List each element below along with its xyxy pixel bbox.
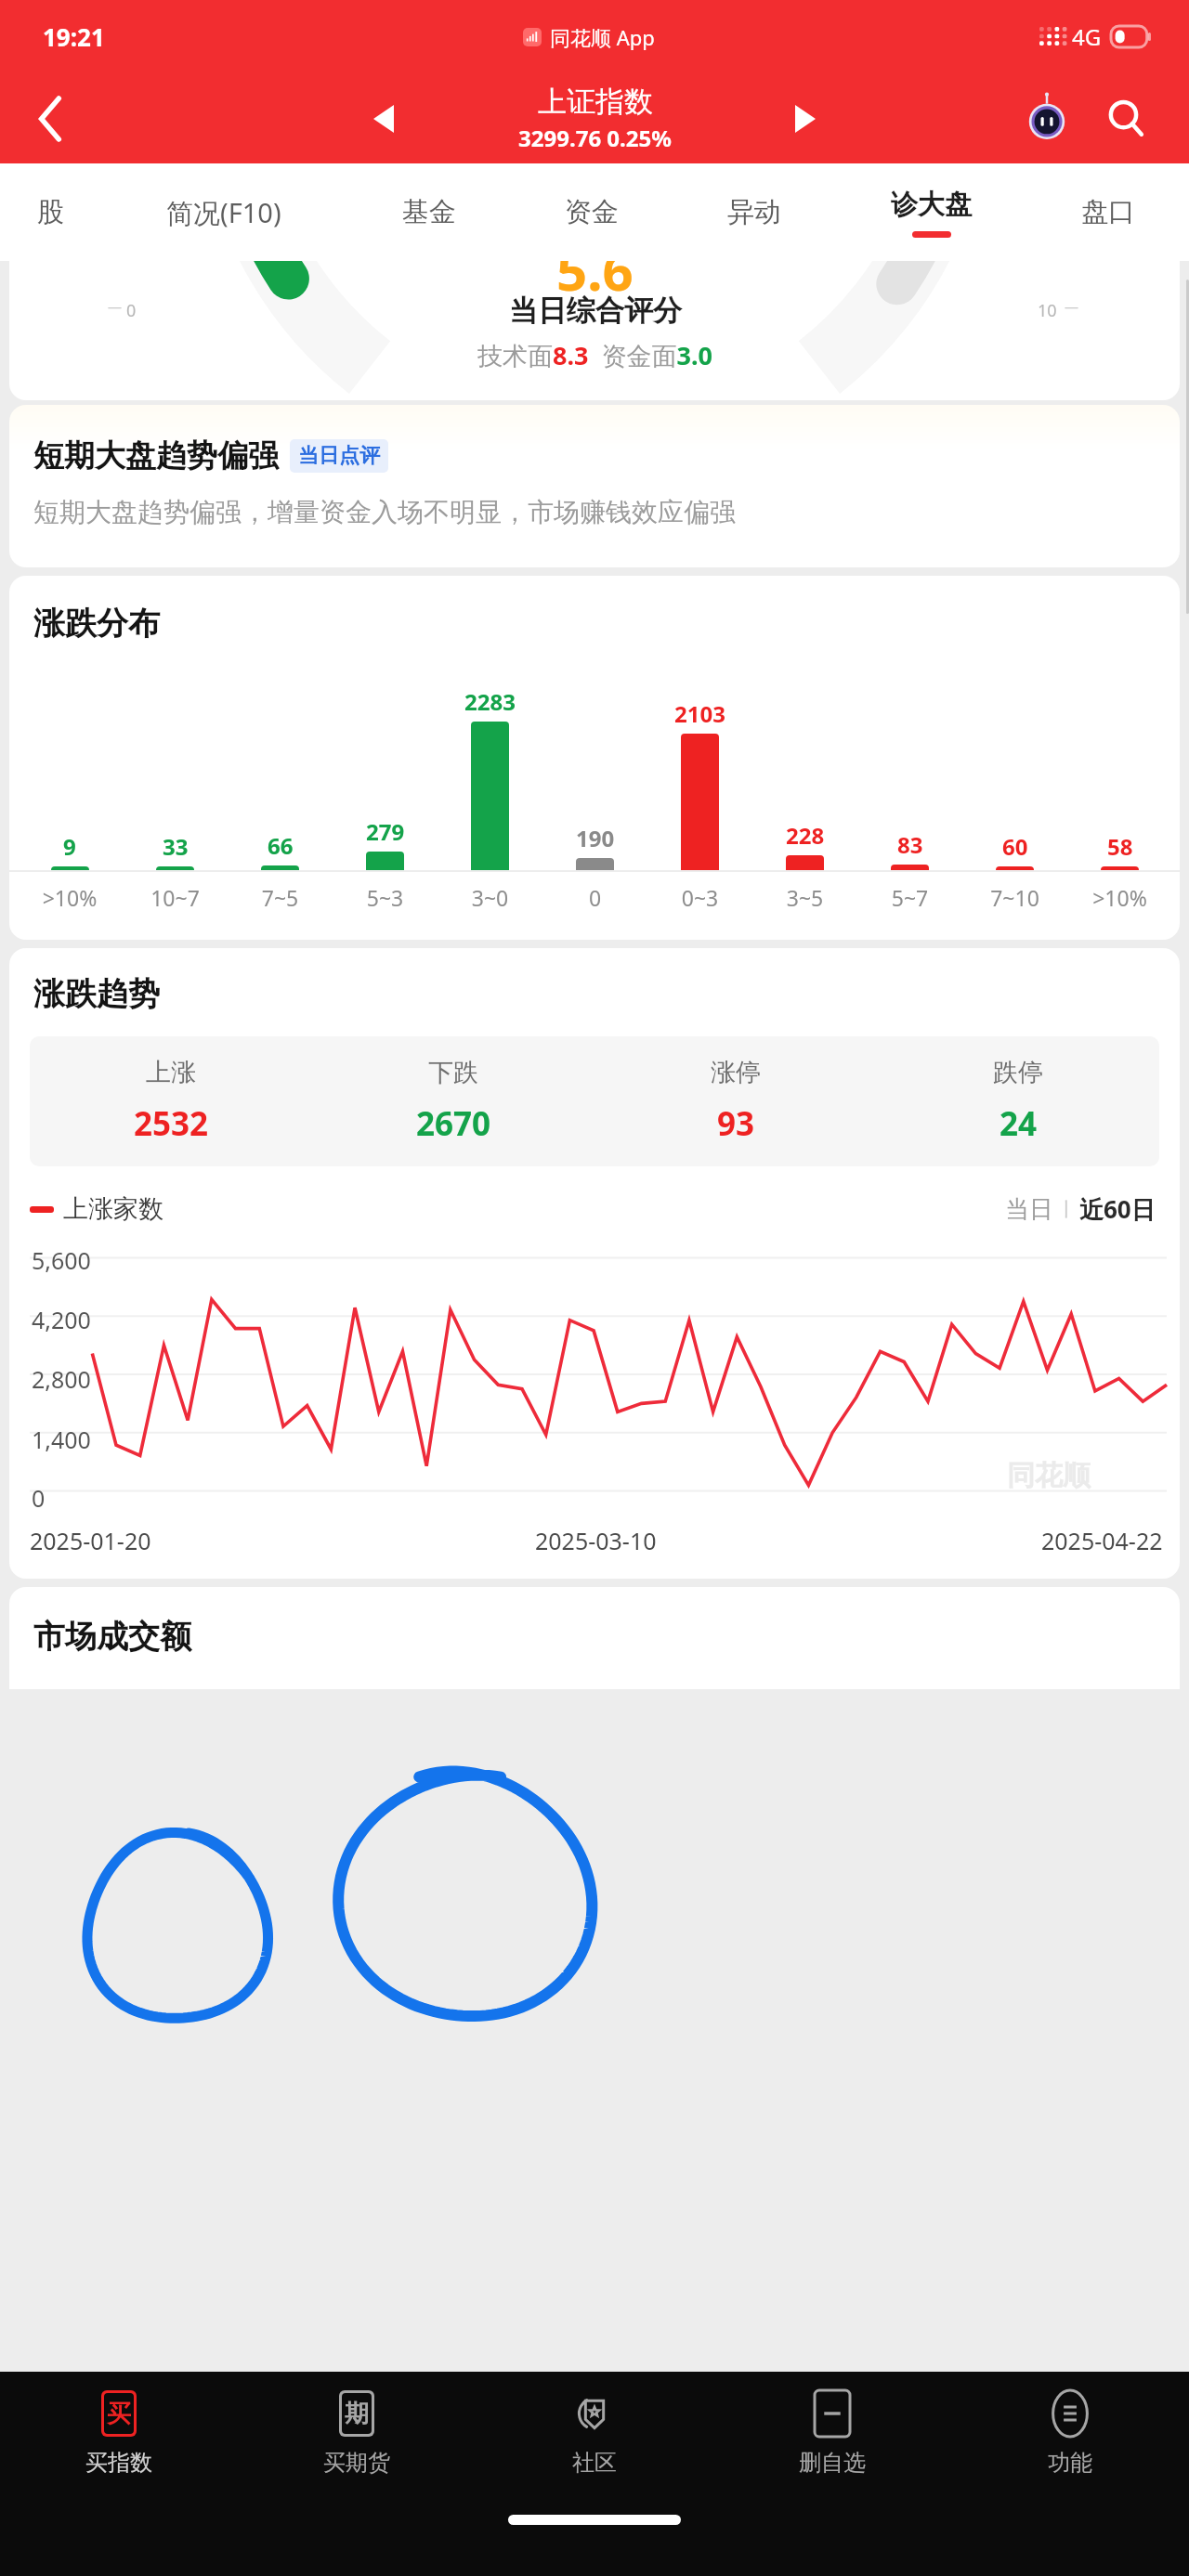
staticText: 异动 — [727, 195, 781, 229]
staticText: 228 — [786, 820, 825, 851]
staticText: 83 — [897, 829, 923, 860]
button[interactable]: 近60日 — [1076, 1192, 1159, 1226]
staticText: 诊大盘 — [891, 188, 972, 222]
staticText: 4G — [1072, 21, 1102, 52]
staticText: 技术面8.3 资金面3.0 — [477, 338, 712, 372]
button[interactable]: 删自选 — [713, 2372, 951, 2494]
staticText: 下跌 — [428, 1057, 478, 1088]
staticText: 66 — [268, 830, 294, 861]
staticText: 涨停 — [711, 1057, 761, 1088]
button[interactable]: Search — [1096, 88, 1157, 150]
staticText: 58 — [1107, 831, 1133, 862]
staticText: 33 — [163, 831, 189, 862]
button[interactable]: Next index — [773, 86, 838, 151]
button[interactable]: 盘口 — [1026, 163, 1189, 261]
button[interactable]: 功能 — [951, 2372, 1189, 2494]
staticText: 279 — [366, 816, 405, 847]
staticText: 简况(F10) — [166, 194, 281, 231]
staticText: 190 — [576, 823, 615, 853]
staticText: 社区 — [572, 2449, 617, 2477]
staticText: 5~7 — [857, 883, 962, 912]
button[interactable]: 股 — [0, 163, 100, 261]
staticText: 2025-01-20 — [30, 1525, 151, 1556]
staticText: 上证指数 — [538, 84, 653, 120]
staticText: 短期大盘趋势偏强 — [33, 436, 279, 475]
staticText: 丨 — [1057, 1198, 1076, 1221]
button[interactable]: 期 — [238, 2372, 476, 2494]
staticText: 5~3 — [333, 883, 438, 912]
staticText: 0 — [542, 883, 647, 912]
button[interactable]: 异动 — [673, 163, 835, 261]
button[interactable]: 买 — [0, 2372, 238, 2494]
staticText: — — [1065, 297, 1079, 316]
staticText: 上涨家数 — [63, 1193, 163, 1225]
staticText: 2283 — [464, 686, 516, 717]
staticText: 删自选 — [799, 2449, 866, 2477]
button[interactable]: AI assistant — [1016, 88, 1078, 150]
button[interactable]: 市场成交额 — [9, 1587, 1180, 1689]
button[interactable]: 上证指数 — [518, 84, 672, 153]
staticText: 涨跌分布 — [33, 604, 160, 644]
staticText: 股 — [37, 195, 64, 229]
button[interactable]: Previous index — [351, 86, 416, 151]
staticText: 买 — [107, 2399, 131, 2429]
staticText: 93 — [717, 1101, 755, 1146]
button[interactable]: 上涨 — [30, 1036, 1159, 1166]
button[interactable]: 涨跌分布 — [9, 576, 1180, 940]
staticText: 3~0 — [438, 883, 542, 912]
staticText: 1,400 — [32, 1424, 91, 1455]
staticText: 7~10 — [962, 883, 1067, 912]
staticText: 当日点评 — [298, 443, 380, 469]
staticText: 盘口 — [1081, 195, 1135, 229]
staticText: 2,800 — [32, 1363, 91, 1395]
button[interactable]: 当日 — [1001, 1194, 1057, 1225]
staticText: 4,200 — [32, 1304, 91, 1335]
staticText: >10% — [1067, 883, 1172, 912]
button[interactable]: 社区 — [476, 2372, 713, 2494]
button[interactable]: Back — [19, 86, 84, 151]
staticText: 短期大盘趋势偏强，增量资金入场不明显，市场赚钱效应偏强 — [33, 496, 736, 528]
staticText: 买期货 — [323, 2449, 390, 2477]
staticText: 3299.76 0.25% — [518, 123, 672, 153]
button[interactable]: 基金 — [347, 163, 510, 261]
staticText: >10% — [17, 883, 123, 912]
button[interactable]: 资金 — [510, 163, 673, 261]
button[interactable]: 诊大盘 — [835, 163, 1026, 261]
staticText: 2025-04-22 — [1041, 1525, 1163, 1556]
staticText: 0~3 — [647, 883, 752, 912]
staticText: 跌停 — [993, 1057, 1043, 1088]
staticText: 5,600 — [32, 1244, 91, 1276]
button[interactable]: 5.6 — [9, 261, 1180, 400]
staticText: 同花顺 App — [550, 23, 655, 51]
staticText: 5.6 — [556, 261, 634, 306]
staticText: 上涨 — [146, 1057, 196, 1088]
staticText: 功能 — [1048, 2449, 1092, 2477]
staticText: 市场成交额 — [33, 1617, 191, 1657]
staticText: 买指数 — [85, 2449, 152, 2477]
staticText: 涨跌趋势 — [33, 974, 160, 1014]
staticText: 期 — [345, 2399, 369, 2429]
staticText: 2670 — [416, 1101, 491, 1146]
staticText: 同花顺 — [1007, 1458, 1091, 1493]
staticText: 2025-03-10 — [535, 1525, 657, 1556]
staticText: 当日综合评分 — [509, 293, 682, 329]
staticText: 10~7 — [123, 883, 228, 912]
staticText: 当日 — [1005, 1194, 1053, 1225]
staticText: 19:21 — [43, 20, 105, 53]
staticText: 9 — [63, 831, 76, 862]
staticText: 7~5 — [228, 883, 333, 912]
button[interactable]: 简况(F10) — [100, 163, 347, 261]
staticText: 2103 — [674, 698, 725, 729]
staticText: 资金 — [565, 195, 619, 229]
staticText: 24 — [1000, 1101, 1038, 1146]
staticText: 60 — [1002, 831, 1028, 862]
staticText: 近60日 — [1079, 1192, 1156, 1226]
staticText: 10 — [1038, 299, 1057, 322]
staticText: 0 — [126, 299, 137, 322]
button[interactable]: 短期大盘趋势偏强 — [9, 405, 1180, 567]
staticText: 2532 — [134, 1101, 209, 1146]
staticText: 3~5 — [752, 883, 857, 912]
staticText: 0 — [32, 1482, 46, 1514]
staticText: — — [108, 297, 123, 316]
staticText: 基金 — [402, 195, 456, 229]
